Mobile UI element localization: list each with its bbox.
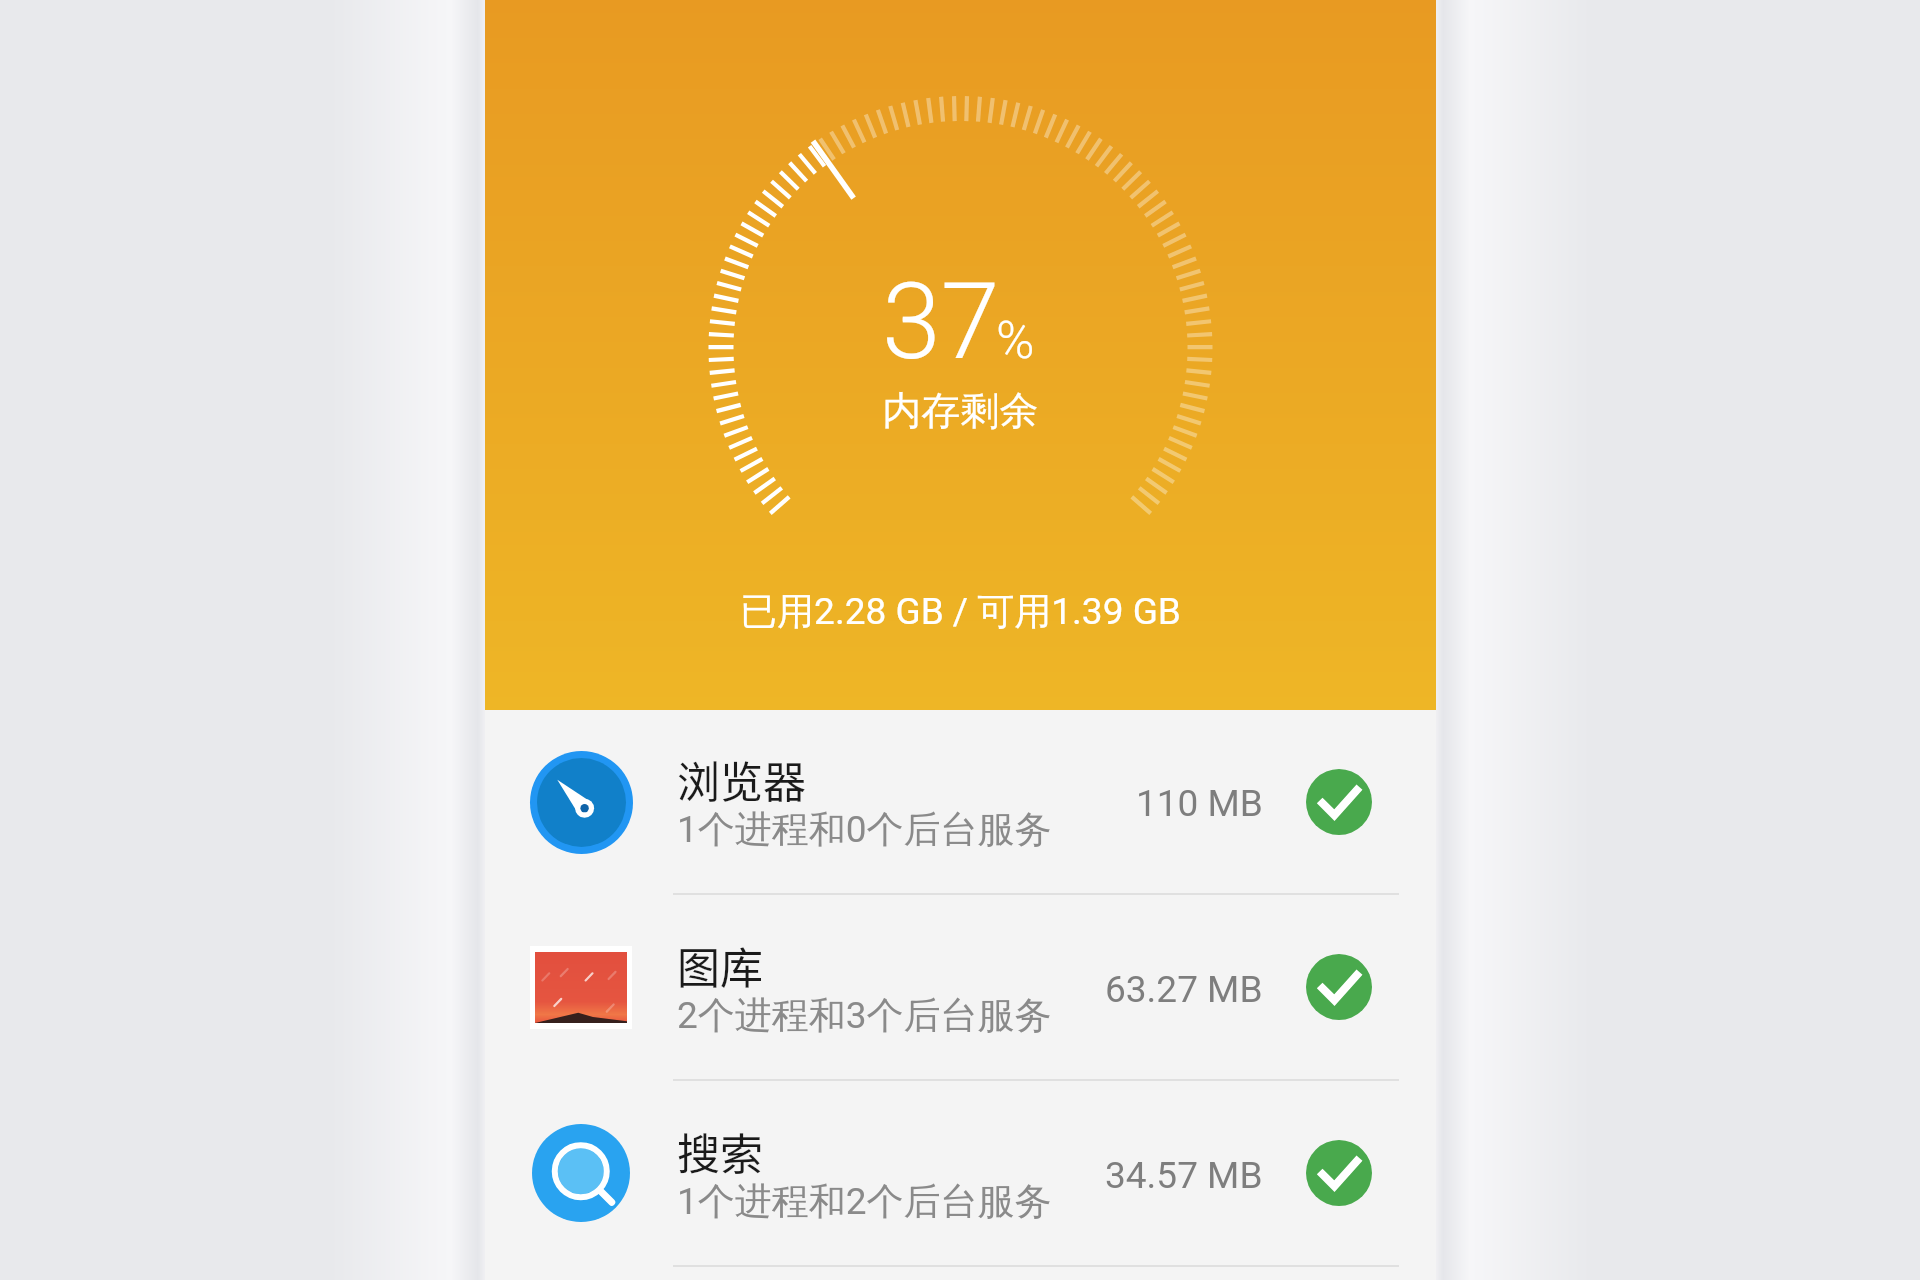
staticText: 1个进程和0个后台服务 — [677, 806, 1052, 853]
other: 浏览器 — [529, 750, 633, 854]
button[interactable]: Selected — [1306, 1140, 1372, 1206]
staticText: 已用2.28 GB / 可用1.39 GB — [485, 588, 1436, 635]
other: 图库 — [529, 935, 633, 1039]
staticText: 110 MB — [1136, 782, 1263, 825]
staticText: 内存剩余 — [485, 386, 1436, 435]
staticText: % — [996, 310, 1035, 371]
button[interactable]: 搜索 — [485, 1081, 1436, 1265]
staticText: 图库 — [677, 934, 763, 996]
staticText: 37 — [882, 260, 1000, 384]
button[interactable]: Selected — [1306, 769, 1372, 835]
staticText: 2个进程和3个后台服务 — [677, 992, 1052, 1039]
button[interactable]: 浏览器 — [485, 710, 1436, 893]
staticText: 1个进程和2个后台服务 — [677, 1178, 1052, 1225]
other: 搜索 — [529, 1121, 633, 1225]
staticText: 浏览器 — [677, 748, 806, 810]
staticText: 63.27 MB — [1105, 968, 1263, 1011]
button[interactable]: 图库 — [485, 895, 1436, 1079]
staticText: 34.57 MB — [1105, 1154, 1263, 1197]
staticText: 搜索 — [677, 1120, 763, 1182]
button[interactable]: Selected — [1306, 954, 1372, 1020]
